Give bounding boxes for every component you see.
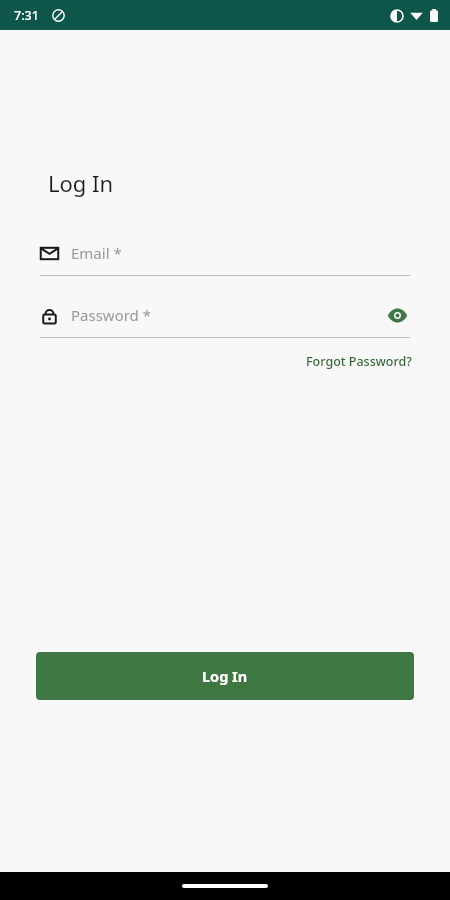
staticText: 7:31 (14, 7, 39, 24)
button[interactable]: Forgot Password? (304, 350, 414, 373)
button[interactable]: Email (40, 236, 410, 276)
other: Email (40, 244, 59, 263)
button[interactable]: Log In (36, 652, 414, 700)
staticText: Email * (71, 243, 410, 263)
staticText: Forgot Password? (306, 353, 412, 370)
other: Password (40, 306, 59, 325)
staticText: Log In (48, 168, 114, 198)
button[interactable]: Password (40, 298, 410, 338)
button[interactable]: Show password (384, 302, 410, 328)
staticText: Password * (71, 305, 384, 325)
staticText: Log In (202, 666, 248, 686)
